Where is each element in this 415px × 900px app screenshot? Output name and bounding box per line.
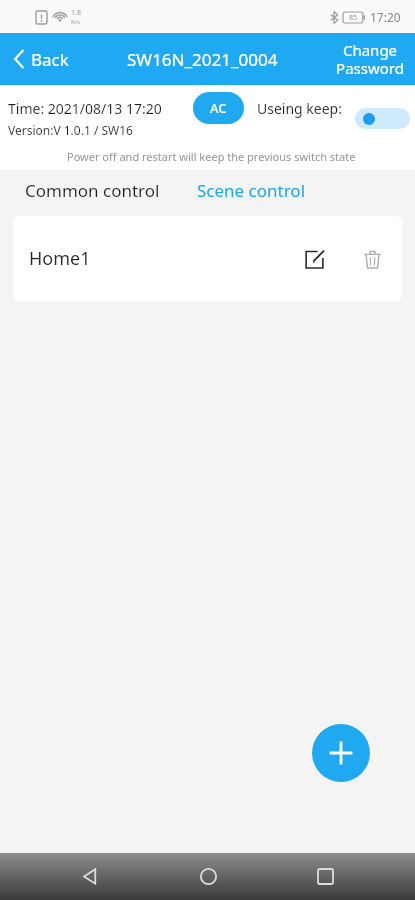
staticText: 17:20 bbox=[370, 9, 401, 25]
button[interactable]: Common control bbox=[25, 179, 160, 202]
button[interactable]: Recent apps bbox=[297, 853, 353, 900]
button[interactable]: AC bbox=[193, 92, 244, 124]
button[interactable]: Scene control bbox=[197, 179, 306, 202]
staticText: Power off and restart will keep the prev… bbox=[67, 149, 356, 164]
staticText: Time: 2021/08/13 17:20 bbox=[8, 99, 162, 118]
button[interactable]: Delete bbox=[352, 239, 392, 279]
staticText: Version:V 1.0.1 / SW16 bbox=[8, 122, 133, 138]
button[interactable]: Home1 bbox=[13, 216, 402, 301]
button[interactable]: Back bbox=[0, 33, 104, 85]
staticText: K/s bbox=[71, 18, 80, 26]
staticText: Useing keep: bbox=[257, 99, 342, 118]
staticText: 85 bbox=[349, 13, 358, 23]
button[interactable]: Home bbox=[180, 853, 236, 900]
button[interactable]: Edit bbox=[294, 239, 334, 279]
staticText: 1.8 bbox=[71, 8, 81, 18]
staticText: AC bbox=[210, 99, 227, 117]
button[interactable]: Useing keep toggle bbox=[355, 108, 410, 129]
button[interactable]: Back bbox=[62, 853, 118, 900]
staticText: Home1 bbox=[29, 246, 91, 271]
staticText: Change Password bbox=[336, 40, 404, 79]
staticText: Back bbox=[31, 48, 69, 71]
staticText: Scene control bbox=[197, 179, 306, 202]
staticText: Common control bbox=[25, 179, 160, 202]
staticText: SW16N_2021_0004 bbox=[127, 48, 278, 71]
button[interactable]: Add scene bbox=[312, 724, 370, 782]
button[interactable]: Change Password bbox=[325, 33, 415, 85]
